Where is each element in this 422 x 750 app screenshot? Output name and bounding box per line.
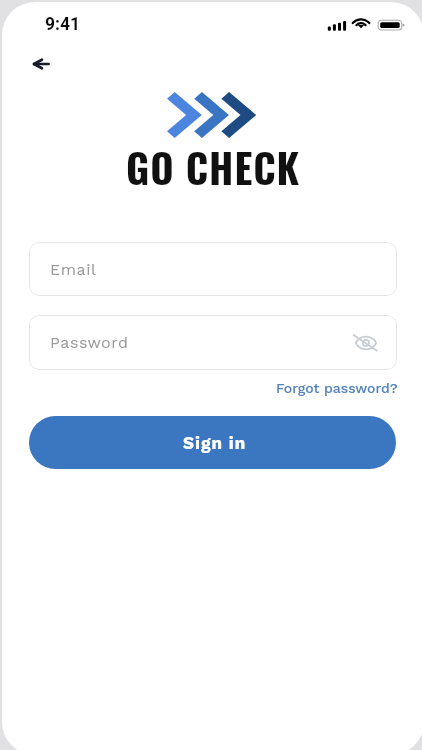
button[interactable]: Password	[29, 315, 397, 370]
button[interactable]: Forgot password?	[276, 380, 398, 396]
staticText: Email	[50, 260, 97, 279]
staticText: Sign in	[183, 433, 247, 453]
staticText: GO CHECK	[126, 137, 301, 196]
button[interactable]: Show password	[349, 326, 383, 360]
button[interactable]: Back	[23, 44, 63, 84]
staticText: 9:41	[45, 14, 81, 35]
button[interactable]: Email	[29, 242, 397, 296]
staticText: Password	[50, 333, 129, 352]
staticText: Forgot password?	[276, 380, 398, 396]
button[interactable]: Sign in	[29, 416, 396, 469]
